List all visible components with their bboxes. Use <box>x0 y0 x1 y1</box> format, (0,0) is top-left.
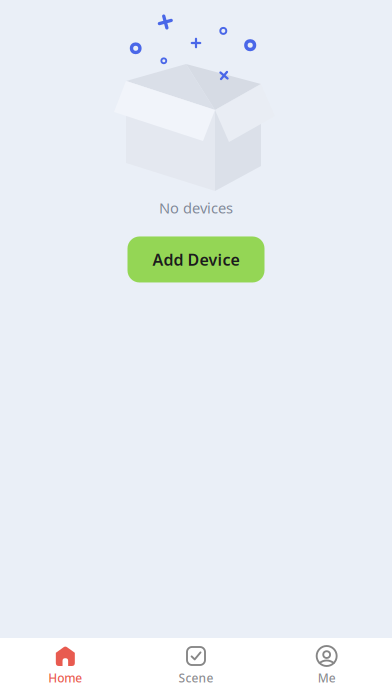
button[interactable]: Add Device <box>127 236 264 282</box>
staticText: Add Device <box>152 249 239 270</box>
button[interactable]: Home <box>0 638 131 696</box>
button[interactable]: Me <box>261 638 392 696</box>
staticText: Me <box>318 670 336 686</box>
staticText: No devices <box>159 198 233 217</box>
staticText: Home <box>48 670 82 686</box>
button[interactable]: Scene <box>131 638 261 696</box>
staticText: Scene <box>178 670 213 686</box>
